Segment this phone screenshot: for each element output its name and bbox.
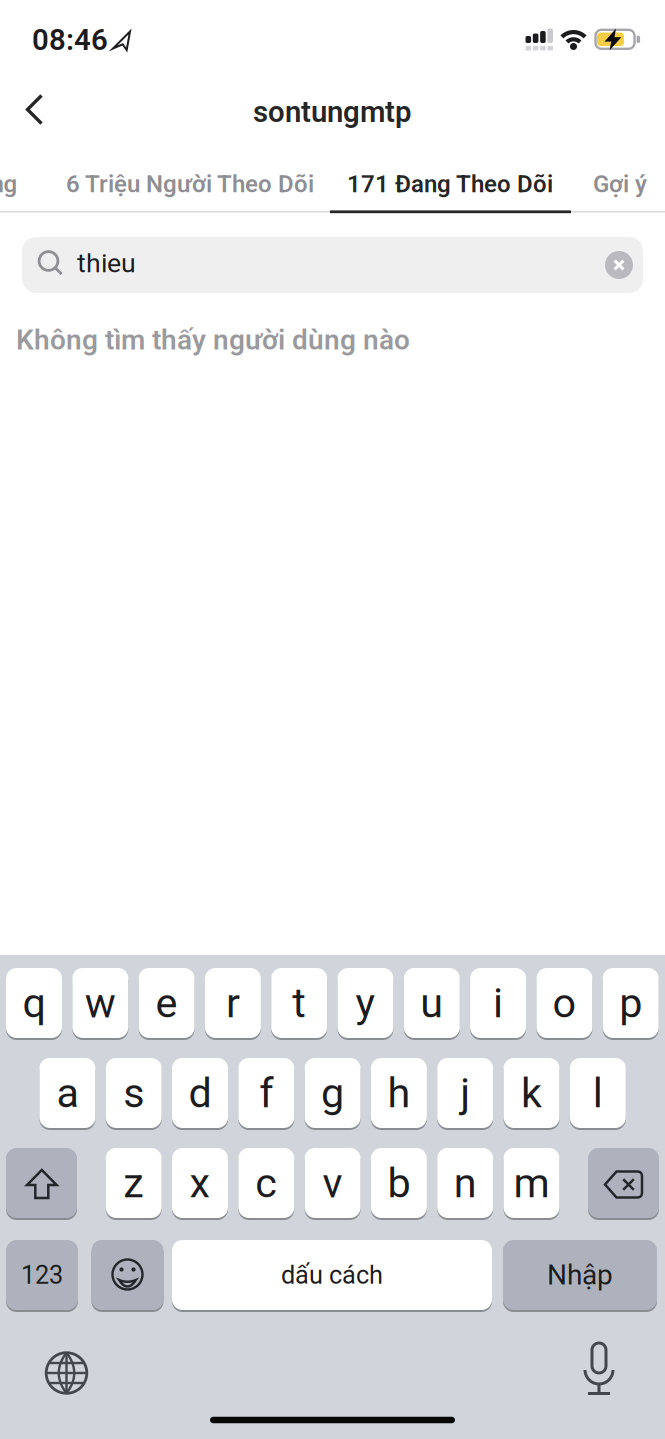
button[interactable]: n: [437, 1148, 493, 1218]
staticText: ng: [0, 170, 17, 198]
button[interactable]: i: [470, 968, 526, 1038]
staticText: a: [56, 1069, 78, 1117]
button[interactable]: g: [305, 1058, 361, 1128]
button[interactable]: d: [172, 1058, 228, 1128]
staticText: dấu cách: [281, 1260, 383, 1289]
button[interactable]: 123: [6, 1240, 78, 1310]
staticText: b: [387, 1159, 410, 1207]
staticText: t: [292, 979, 306, 1027]
staticText: p: [619, 979, 642, 1027]
button[interactable]: j: [437, 1058, 493, 1128]
button[interactable]: p: [603, 968, 659, 1038]
button[interactable]: Emoji: [91, 1240, 163, 1310]
button[interactable]: e: [139, 968, 195, 1038]
staticText: c: [255, 1159, 277, 1207]
button[interactable]: s: [106, 1058, 162, 1128]
button[interactable]: w: [72, 968, 128, 1038]
staticText: 08:46: [32, 23, 108, 57]
staticText: u: [420, 979, 443, 1027]
button[interactable]: a: [39, 1058, 95, 1128]
staticText: 171 Đang Theo Dõi: [347, 170, 553, 198]
button[interactable]: Dictate: [569, 1341, 629, 1401]
staticText: j: [460, 1069, 470, 1117]
staticText: f: [259, 1069, 273, 1117]
button[interactable]: u: [404, 968, 460, 1038]
staticText: Nhập: [547, 1259, 613, 1291]
button[interactable]: c: [238, 1148, 294, 1218]
staticText: n: [454, 1159, 477, 1207]
staticText: w: [85, 979, 116, 1027]
button[interactable]: Back: [10, 88, 66, 132]
button[interactable]: q: [6, 968, 62, 1038]
staticText: k: [521, 1069, 542, 1117]
button[interactable]: Shift: [6, 1148, 77, 1218]
staticText: Gợi ý: [593, 170, 647, 198]
button[interactable]: Delete: [588, 1148, 659, 1218]
button[interactable]: Nhập: [503, 1240, 657, 1310]
button[interactable]: k: [503, 1058, 559, 1128]
staticText: v: [323, 1159, 343, 1207]
button[interactable]: 171 Đang Theo Dõi: [347, 170, 553, 198]
staticText: Không tìm thấy người dùng nào: [16, 324, 410, 356]
button[interactable]: m: [503, 1148, 559, 1218]
button[interactable]: Next keyboard: [36, 1343, 96, 1403]
button[interactable]: Gợi ý: [593, 170, 647, 198]
staticText: e: [156, 979, 178, 1027]
staticText: 123: [21, 1260, 63, 1289]
staticText: i: [493, 979, 503, 1027]
button[interactable]: l: [570, 1058, 626, 1128]
staticText: q: [22, 979, 45, 1027]
button[interactable]: x: [172, 1148, 228, 1218]
staticText: h: [387, 1069, 410, 1117]
button[interactable]: 6 Triệu Người Theo Dõi: [66, 170, 314, 198]
button[interactable]: v: [305, 1148, 361, 1218]
staticText: y: [355, 979, 375, 1027]
button[interactable]: dấu cách: [172, 1240, 492, 1310]
staticText: r: [226, 979, 240, 1027]
staticText: thieu: [77, 248, 136, 278]
button[interactable]: z: [106, 1148, 162, 1218]
button[interactable]: h: [371, 1058, 427, 1128]
button[interactable]: t: [271, 968, 327, 1038]
button[interactable]: ng: [0, 170, 17, 198]
staticText: l: [593, 1069, 603, 1117]
staticText: m: [513, 1159, 549, 1207]
staticText: z: [123, 1159, 144, 1207]
staticText: s: [123, 1069, 144, 1117]
button[interactable]: r: [205, 968, 261, 1038]
staticText: sontungmtp: [253, 95, 412, 129]
staticText: o: [552, 979, 576, 1027]
staticText: 6 Triệu Người Theo Dõi: [66, 170, 314, 198]
button[interactable]: f: [238, 1058, 294, 1128]
staticText: d: [188, 1069, 211, 1117]
button[interactable]: y: [337, 968, 393, 1038]
staticText: g: [321, 1069, 344, 1117]
button[interactable]: o: [536, 968, 592, 1038]
button[interactable]: Search: [22, 237, 643, 293]
button[interactable]: Clear search text: [605, 251, 633, 279]
staticText: x: [189, 1159, 210, 1207]
button[interactable]: b: [371, 1148, 427, 1218]
